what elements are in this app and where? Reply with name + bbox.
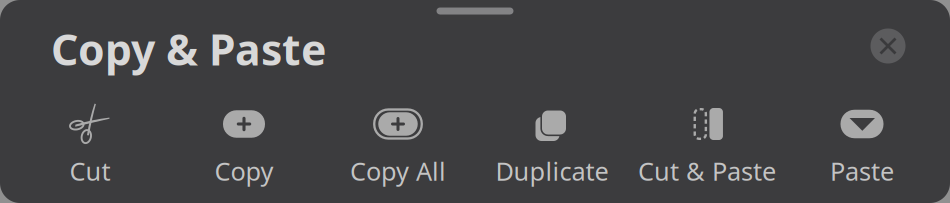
button[interactable]: Cut & Paste <box>630 82 784 182</box>
staticText: Cut & Paste <box>638 154 776 188</box>
staticText: Cut <box>69 154 110 188</box>
button[interactable]: Cut <box>13 82 167 182</box>
button[interactable]: Paste <box>785 82 939 182</box>
button[interactable]: Copy <box>167 82 321 182</box>
staticText: Copy & Paste <box>51 21 326 77</box>
staticText: Copy All <box>350 154 446 188</box>
button[interactable]: Close <box>866 24 910 68</box>
staticText: Paste <box>830 154 894 188</box>
button[interactable]: Copy All <box>321 82 475 182</box>
staticText: Copy <box>214 154 273 188</box>
staticText: Duplicate <box>495 154 608 188</box>
button[interactable]: Duplicate <box>475 82 629 182</box>
